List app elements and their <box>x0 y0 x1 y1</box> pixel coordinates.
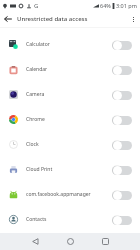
button[interactable]: com.facebook.appmanager <box>0 182 140 207</box>
button[interactable]: Recent apps <box>93 233 117 250</box>
staticText: Calendar <box>26 66 109 73</box>
staticText: G <box>34 2 39 10</box>
staticText: Chrome <box>26 116 109 123</box>
staticText: Calculator <box>26 41 109 48</box>
staticText: Contacts <box>26 216 109 223</box>
staticText: 3:01 pm <box>116 2 137 9</box>
button[interactable]: Contacts <box>0 207 140 232</box>
staticText: Cloud Print <box>26 166 109 173</box>
staticText: 64% <box>100 2 111 9</box>
staticText: Camera <box>26 91 109 98</box>
button[interactable]: Calculator <box>0 32 140 57</box>
staticText: com.facebook.appmanager <box>26 191 109 198</box>
staticText: Unrestricted data access <box>17 15 88 23</box>
staticText: Clock <box>26 141 109 148</box>
button[interactable]: Home <box>58 233 82 250</box>
button[interactable]: Calendar <box>0 57 140 82</box>
button[interactable]: Back <box>23 233 47 250</box>
button[interactable]: Chrome <box>0 107 140 132</box>
button[interactable]: Camera <box>0 82 140 107</box>
button[interactable]: Cloud Print <box>0 157 140 182</box>
button[interactable]: Navigate up <box>0 11 16 27</box>
button[interactable]: More options <box>126 11 140 27</box>
button[interactable]: Clock <box>0 132 140 157</box>
